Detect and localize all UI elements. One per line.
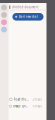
staticText: Image grid demo — [13, 104, 29, 108]
button[interactable]: Start new chat — [12, 13, 43, 21]
staticText: 2m ago — [32, 98, 42, 101]
button[interactable]: Read the article — [9, 96, 42, 103]
staticText: Read the article — [14, 98, 29, 101]
staticText: Untitled document — [12, 5, 39, 9]
button[interactable]: Image grid demo — [9, 103, 42, 110]
staticText: 5m ago — [32, 104, 42, 108]
button[interactable]: Untitled document — [9, 4, 45, 10]
staticText: Start new chat — [19, 15, 38, 18]
